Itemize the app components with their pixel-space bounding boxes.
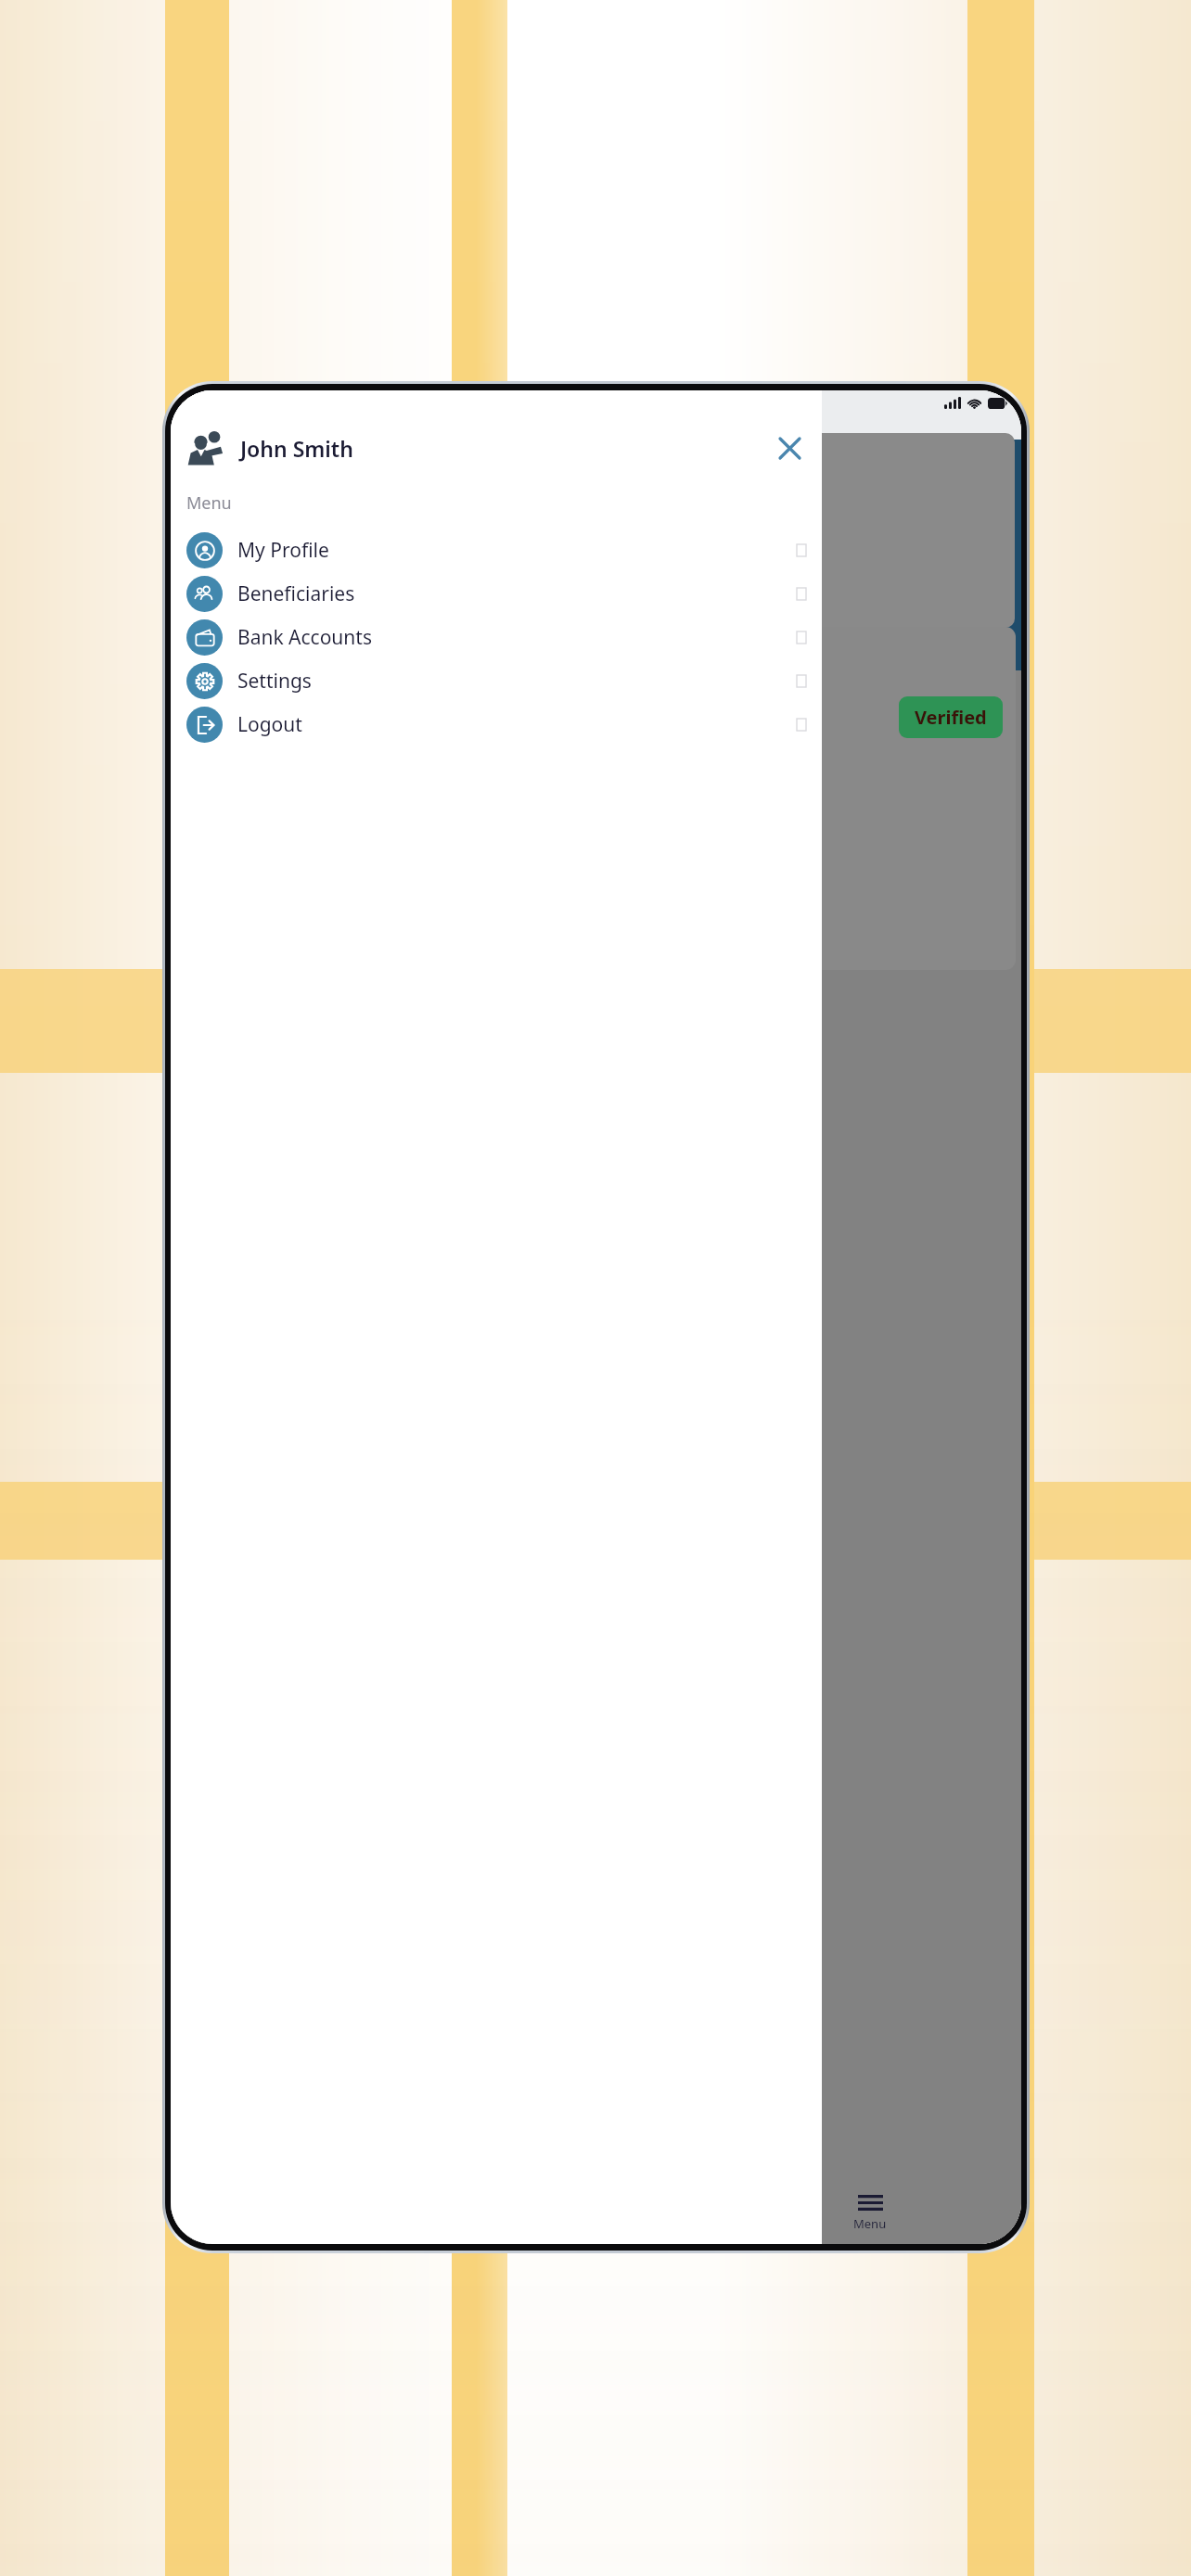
button[interactable]: Close [772, 430, 807, 465]
button[interactable]: Logout [171, 703, 822, 746]
button[interactable]: Bank Accounts [171, 616, 822, 659]
button[interactable]: Beneficiaries [171, 572, 822, 616]
staticText: Settings [237, 668, 312, 695]
button[interactable]: Verified [899, 696, 1003, 738]
staticText: 9:45 [187, 393, 217, 414]
staticText: Menu [186, 491, 232, 515]
staticText: My Profile [237, 537, 329, 564]
button[interactable]: Settings [171, 659, 822, 703]
staticText: ES LTD [174, 543, 232, 567]
button[interactable]: My Profile [171, 529, 822, 572]
staticText: Bank Accounts [237, 624, 372, 651]
staticText: John Smith [240, 434, 353, 463]
staticText: Menu [853, 2215, 887, 2232]
button[interactable]: Menu [719, 2183, 1021, 2244]
staticText: Verified [915, 705, 987, 730]
staticText: Beneficiaries [237, 580, 355, 607]
staticText: Logout [237, 711, 302, 738]
